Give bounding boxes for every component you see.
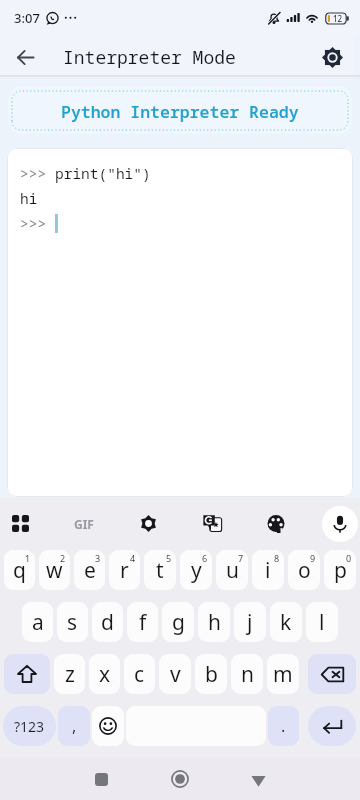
staticText: , (72, 715, 77, 737)
button[interactable]: m (267, 654, 299, 694)
button[interactable]: j (234, 602, 266, 642)
staticText: 3:07 (14, 9, 40, 27)
staticText: f (139, 608, 147, 637)
staticText: p (334, 556, 347, 585)
staticText: v (170, 660, 181, 689)
staticText: 9 (310, 552, 316, 564)
staticText: 7 (238, 552, 244, 564)
button[interactable]: Emoji (92, 706, 124, 746)
button[interactable]: Shift (4, 654, 50, 694)
button[interactable]: , (58, 706, 90, 746)
staticText: g (172, 608, 185, 637)
button[interactable]: i (252, 550, 284, 590)
staticText: 8 (274, 552, 280, 564)
button[interactable]: p (324, 550, 356, 590)
button[interactable]: z (54, 654, 85, 694)
button[interactable]: GIF (52, 498, 116, 549)
staticText: >>> (20, 163, 55, 183)
staticText: j (247, 608, 253, 637)
button[interactable]: Backspace (308, 654, 356, 694)
staticText: print("hi") (55, 163, 151, 183)
button[interactable]: s (57, 602, 88, 642)
button[interactable]: l (306, 602, 338, 642)
button[interactable]: ?123 (3, 706, 56, 746)
button[interactable]: e (74, 550, 105, 590)
staticText: 4 (130, 552, 136, 564)
staticText: a (32, 608, 44, 637)
staticText: Interpreter Mode (63, 45, 236, 70)
button[interactable]: . (268, 706, 299, 746)
staticText: 3 (95, 552, 101, 564)
staticText: r (120, 556, 129, 585)
staticText: 1 (25, 552, 31, 564)
staticText: b (205, 660, 218, 689)
staticText: u (226, 556, 239, 585)
staticText: s (67, 608, 78, 637)
button[interactable]: d (92, 602, 123, 642)
button[interactable]: h (198, 602, 230, 642)
staticText: . (281, 715, 286, 737)
staticText: n (241, 660, 254, 689)
button[interactable]: a (22, 602, 53, 642)
button[interactable]: u (216, 550, 248, 590)
button[interactable]: Translate (180, 498, 244, 549)
staticText: m (273, 660, 293, 689)
staticText: Python Interpreter Ready (61, 100, 299, 122)
staticText: 2 (60, 552, 66, 564)
staticText: e (84, 556, 96, 585)
button[interactable]: k (270, 602, 302, 642)
staticText: x (99, 660, 111, 689)
button[interactable]: Home (140, 758, 219, 800)
button[interactable]: o (288, 550, 320, 590)
button[interactable]: Enter (308, 706, 356, 746)
button[interactable]: Themes (244, 498, 308, 549)
button[interactable]: q (4, 550, 35, 590)
staticText: d (101, 608, 114, 637)
staticText: q (13, 556, 26, 585)
staticText: y (191, 556, 202, 585)
button[interactable]: b (195, 654, 227, 694)
button[interactable]: n (231, 654, 263, 694)
staticText: o (298, 556, 311, 585)
staticText: hi (20, 188, 38, 208)
staticText: z (65, 660, 75, 689)
button[interactable]: Settings (312, 37, 352, 77)
button[interactable]: r (109, 550, 140, 590)
button[interactable]: Keyboard settings (116, 498, 180, 549)
staticText: 12 (333, 13, 343, 24)
button[interactable]: f (127, 602, 158, 642)
button[interactable]: Recents (62, 758, 140, 800)
staticText: w (46, 556, 63, 585)
staticText: 5 (166, 552, 172, 564)
staticText: GIF (74, 516, 94, 532)
staticText: t (156, 556, 164, 585)
staticText: ?123 (14, 717, 45, 736)
staticText: >>> (20, 213, 55, 233)
button[interactable]: c (124, 654, 155, 694)
staticText: l (319, 608, 325, 637)
button[interactable]: g (162, 602, 194, 642)
button[interactable]: x (89, 654, 120, 694)
button[interactable]: v (159, 654, 191, 694)
button[interactable]: t (144, 550, 176, 590)
button[interactable]: Back (219, 758, 298, 800)
staticText: c (134, 660, 145, 689)
staticText: 0 (346, 552, 352, 564)
staticText: h (208, 608, 221, 637)
button[interactable]: y (180, 550, 212, 590)
staticText: k (280, 608, 292, 637)
button[interactable]: Clipboard (0, 498, 52, 549)
button[interactable]: w (39, 550, 70, 590)
button[interactable]: Voice input (308, 498, 360, 549)
staticText: i (265, 556, 271, 585)
button[interactable]: Back (5, 37, 45, 77)
staticText: 6 (202, 552, 208, 564)
